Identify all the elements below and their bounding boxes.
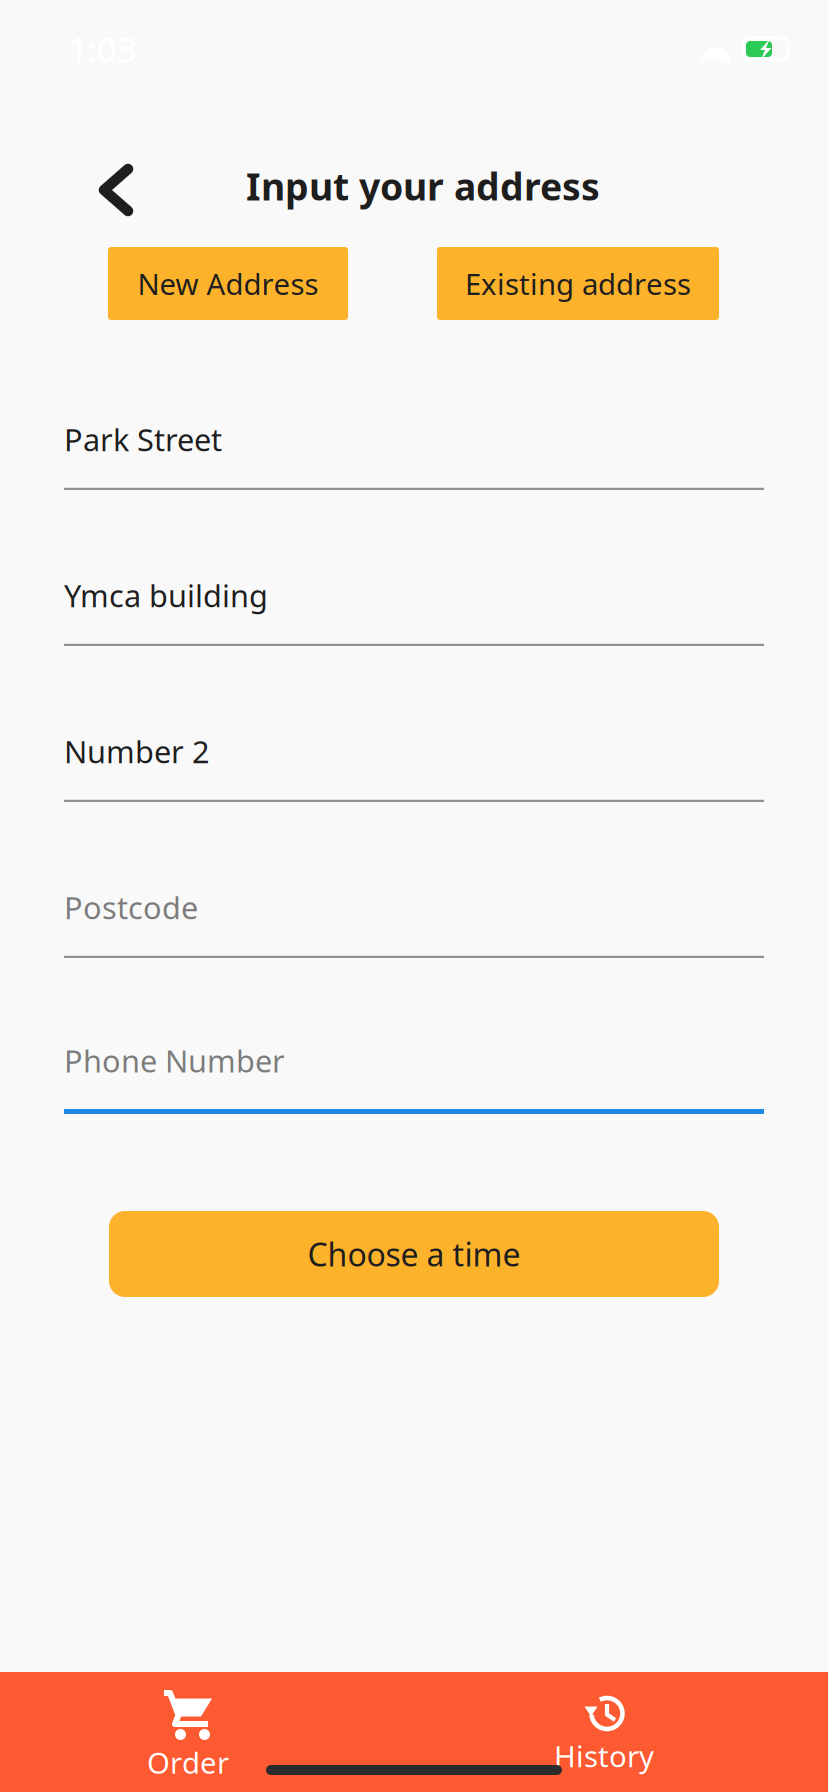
staticText: Postcode [64, 887, 198, 928]
staticText: Input your address [246, 161, 600, 211]
staticText: Number 2 [64, 731, 210, 772]
staticText: Ymca building [64, 575, 268, 616]
staticText: History [554, 1736, 654, 1775]
staticText: Existing address [465, 264, 691, 303]
button[interactable]: History [510, 1668, 698, 1792]
button[interactable]: New Address [108, 247, 348, 320]
button[interactable]: Existing address [437, 247, 719, 320]
staticText: Choose a time [307, 1233, 520, 1275]
staticText: Park Street [64, 419, 222, 460]
staticText: Phone Number [64, 1040, 285, 1081]
button[interactable]: Back [70, 137, 162, 235]
staticText: New Address [137, 264, 318, 303]
button[interactable]: Order [94, 1672, 282, 1792]
staticText: Order [147, 1743, 229, 1782]
button[interactable]: Choose a time [109, 1211, 719, 1297]
